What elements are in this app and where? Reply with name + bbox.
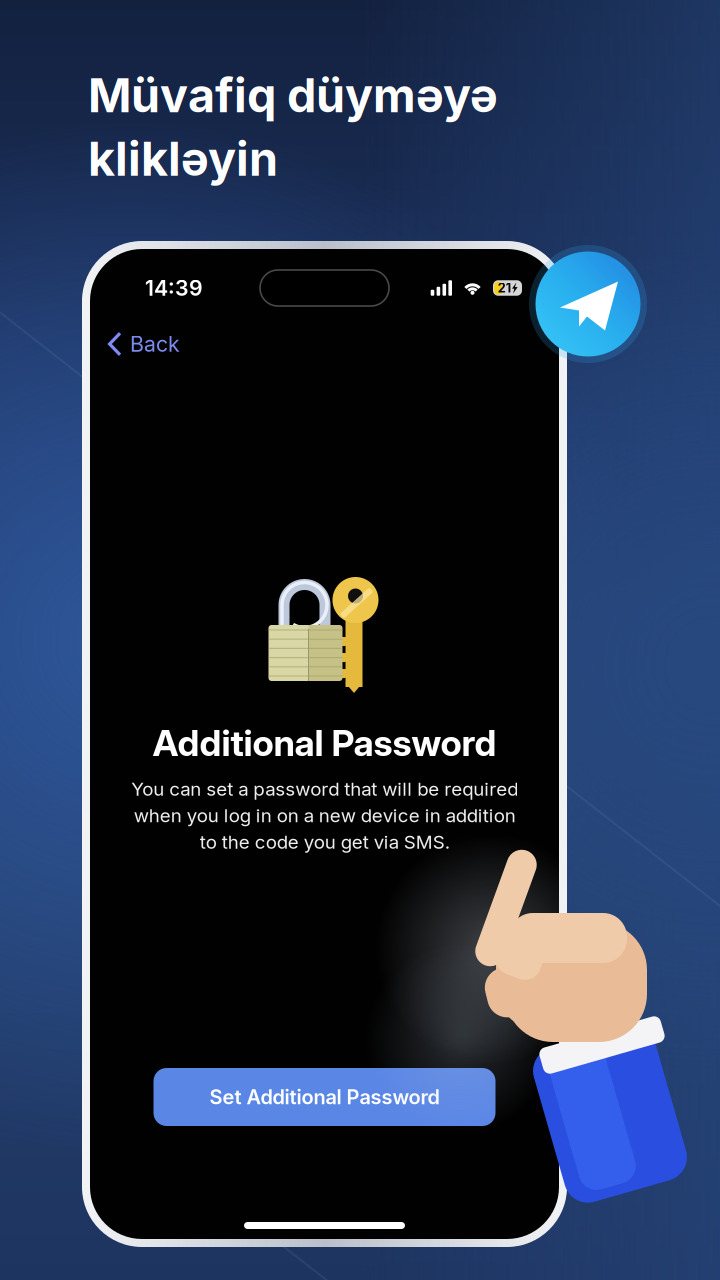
- staticText: Additional Password: [152, 721, 496, 765]
- staticText: to the code you get via SMS.: [199, 831, 449, 853]
- staticText: 21: [498, 280, 511, 296]
- staticText: 14:39: [145, 275, 203, 301]
- button[interactable]: Back: [90, 321, 190, 367]
- button[interactable]: Set Additional Password: [153, 1068, 495, 1126]
- staticText: Back: [130, 331, 180, 357]
- staticText: Müvafiq düyməyə: [88, 67, 498, 123]
- staticText: when you log in on a new device in addit…: [133, 804, 515, 827]
- staticText: klikləyin: [88, 130, 278, 187]
- staticText: Set Additional Password: [209, 1085, 439, 1109]
- staticText: You can set a password that will be requ…: [131, 778, 518, 800]
